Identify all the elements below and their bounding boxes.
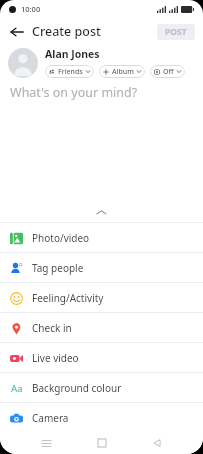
button[interactable]: Camera: [0, 403, 203, 432]
button[interactable]: Album: [99, 65, 145, 78]
staticText: Feeling/Activity: [32, 291, 104, 305]
staticText: Create post: [32, 23, 101, 40]
button[interactable]: Recents: [36, 433, 56, 453]
button[interactable]: Check in: [0, 313, 203, 342]
staticText: Friends: [58, 67, 83, 77]
button[interactable]: Live video: [0, 343, 203, 372]
staticText: Album: [112, 67, 134, 77]
staticText: Aa: [11, 382, 23, 395]
button[interactable]: Off: [150, 65, 185, 78]
button[interactable]: Aa: [0, 373, 203, 402]
staticText: Camera: [32, 411, 69, 425]
staticText: 10:00: [21, 4, 41, 14]
button[interactable]: Feeling/Activity: [0, 283, 203, 312]
button[interactable]: Tag people: [0, 253, 203, 282]
button[interactable]: Back: [8, 23, 25, 40]
staticText: POST: [165, 26, 187, 38]
button[interactable]: Back: [147, 433, 167, 453]
staticText: Photo/video: [32, 231, 90, 245]
staticText: Background colour: [32, 381, 122, 395]
button[interactable]: Home: [92, 433, 112, 453]
staticText: Live video: [32, 351, 79, 365]
staticText: Off: [163, 67, 174, 77]
button[interactable]: Expand: [0, 202, 203, 222]
staticText: Alan Jones: [45, 47, 100, 61]
staticText: What's on your mind?: [10, 84, 138, 101]
button[interactable]: POST: [157, 24, 195, 40]
button[interactable]: Friends: [45, 65, 94, 78]
staticText: Tag people: [32, 261, 84, 275]
button[interactable]: Photo/video: [0, 223, 203, 252]
staticText: Check in: [32, 321, 72, 335]
